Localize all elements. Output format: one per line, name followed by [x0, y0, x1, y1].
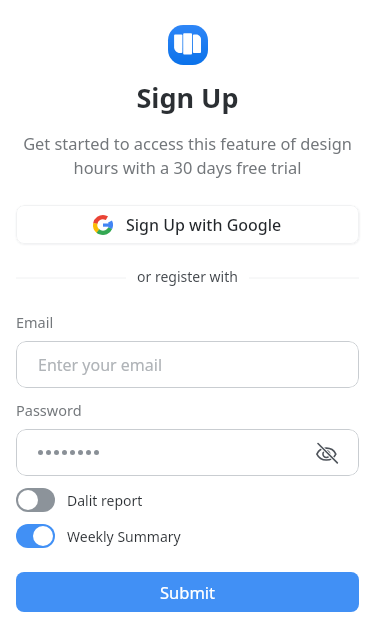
button[interactable]: Show password [310, 436, 344, 470]
staticText: Submit [160, 581, 216, 603]
button[interactable]: Show password [16, 429, 359, 476]
button[interactable]: Weekly Summary [16, 524, 359, 548]
staticText: Dalit report [67, 491, 143, 510]
button[interactable]: Sign Up with Google [16, 205, 359, 244]
staticText: Sign Up [0, 79, 375, 116]
button[interactable]: Submit [16, 572, 359, 612]
staticText: or register with [137, 267, 238, 286]
staticText: Enter your email [38, 354, 163, 376]
staticText: Weekly Summary [67, 527, 181, 546]
staticText: Email [16, 312, 54, 332]
staticText: Get started to access this feature of de… [16, 132, 359, 178]
staticText: Sign Up with Google [126, 214, 282, 236]
button[interactable]: Dalit report [16, 488, 359, 512]
button[interactable]: Enter your email [16, 341, 359, 388]
staticText: Password [16, 400, 82, 420]
